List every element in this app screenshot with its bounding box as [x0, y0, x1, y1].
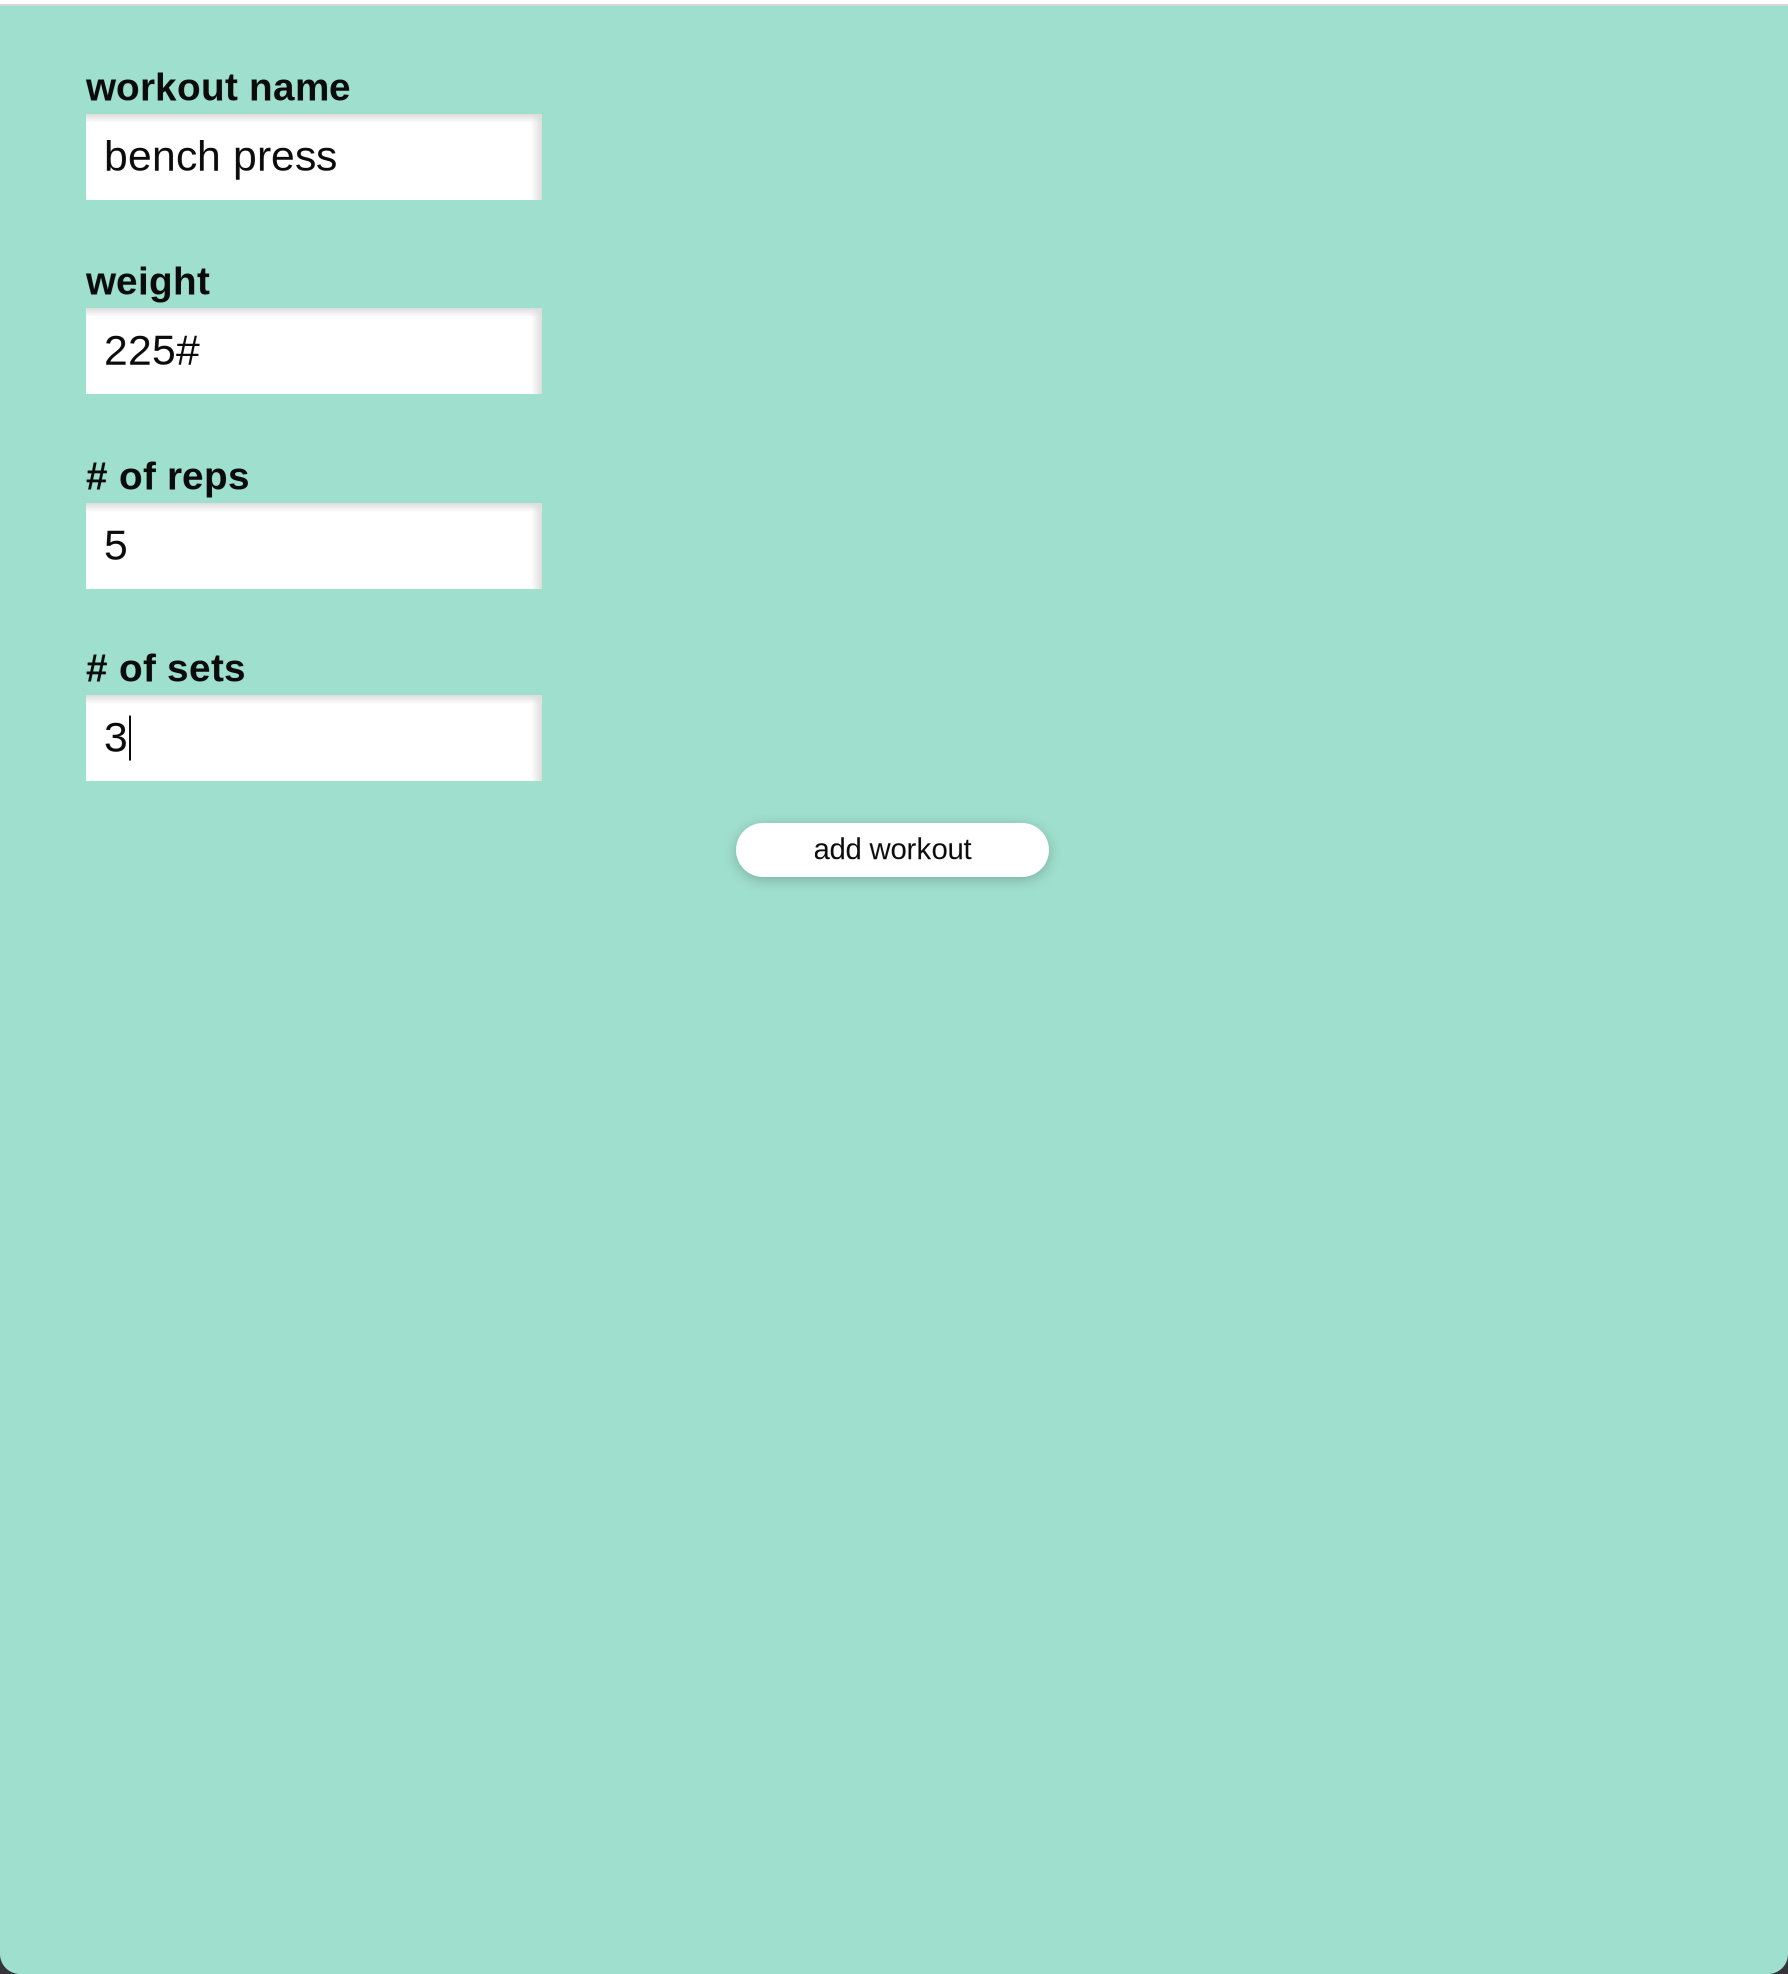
staticText: weight	[86, 259, 210, 303]
button[interactable]: weight	[86, 308, 542, 394]
staticText: # of sets	[86, 646, 246, 690]
button[interactable]: add workout	[736, 823, 1049, 877]
staticText: 225#	[104, 326, 200, 374]
staticText: # of reps	[86, 454, 250, 498]
button[interactable]: workout name	[86, 114, 542, 200]
staticText: bench press	[104, 132, 337, 180]
staticText: 3	[104, 713, 128, 761]
staticText: workout name	[86, 65, 351, 109]
button[interactable]: # of sets	[86, 695, 542, 781]
staticText: 5	[104, 521, 128, 569]
staticText: add workout	[813, 833, 971, 865]
button[interactable]: # of reps	[86, 503, 542, 589]
